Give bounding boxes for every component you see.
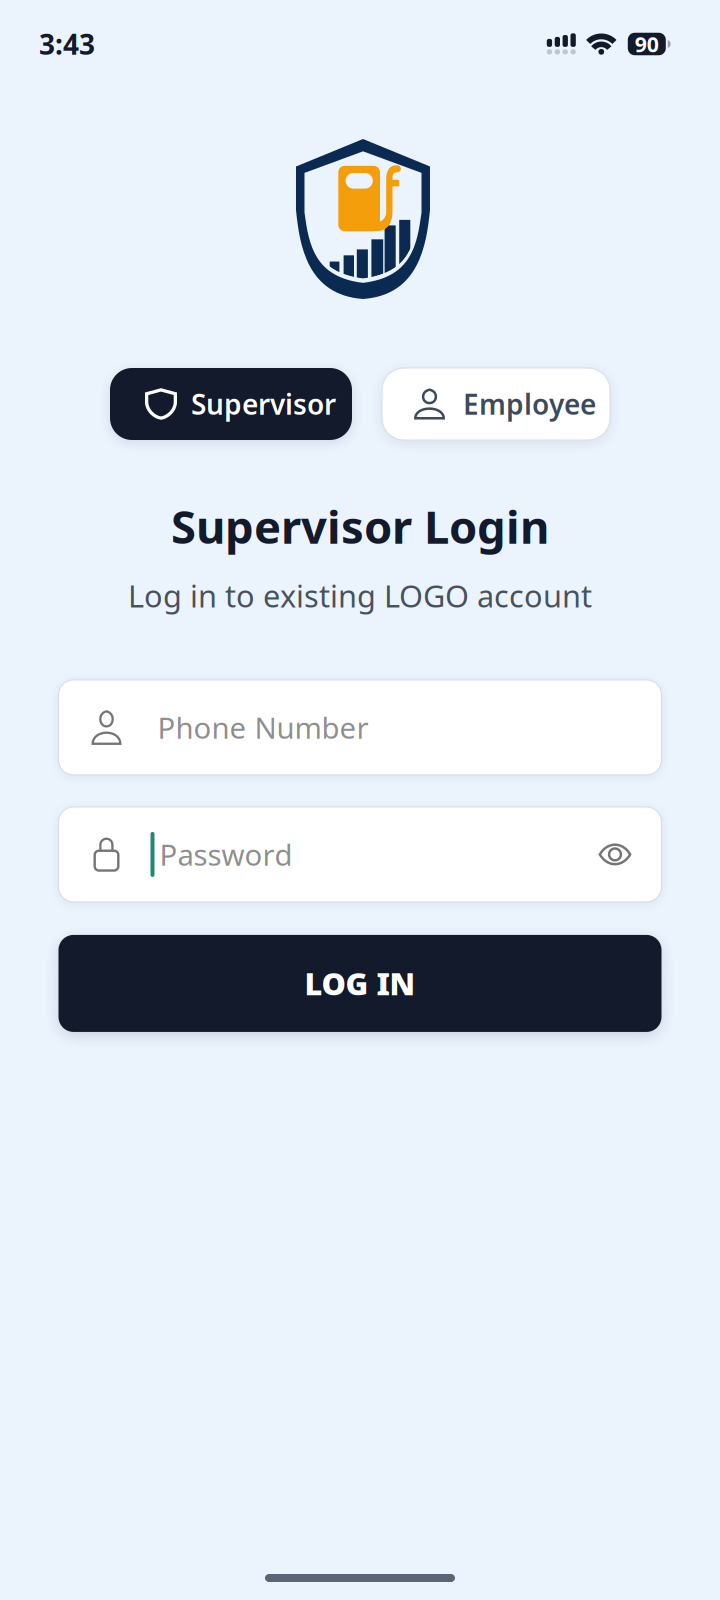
button[interactable]: LOG IN — [58, 935, 661, 1032]
staticText: 90 — [635, 30, 659, 58]
staticText: Phone Number — [157, 708, 368, 747]
staticText: Employee — [463, 385, 596, 423]
button[interactable]: Supervisor — [110, 368, 352, 440]
button[interactable]: Employee — [382, 368, 610, 440]
staticText: LOG IN — [304, 963, 415, 1004]
staticText: 3:43 — [39, 25, 95, 63]
staticText: Supervisor — [191, 385, 336, 423]
staticText: Supervisor Login — [171, 496, 549, 556]
staticText: Password — [159, 835, 292, 874]
button[interactable]: Show password — [574, 807, 661, 902]
staticText: Log in to existing LOGO account — [128, 575, 592, 616]
